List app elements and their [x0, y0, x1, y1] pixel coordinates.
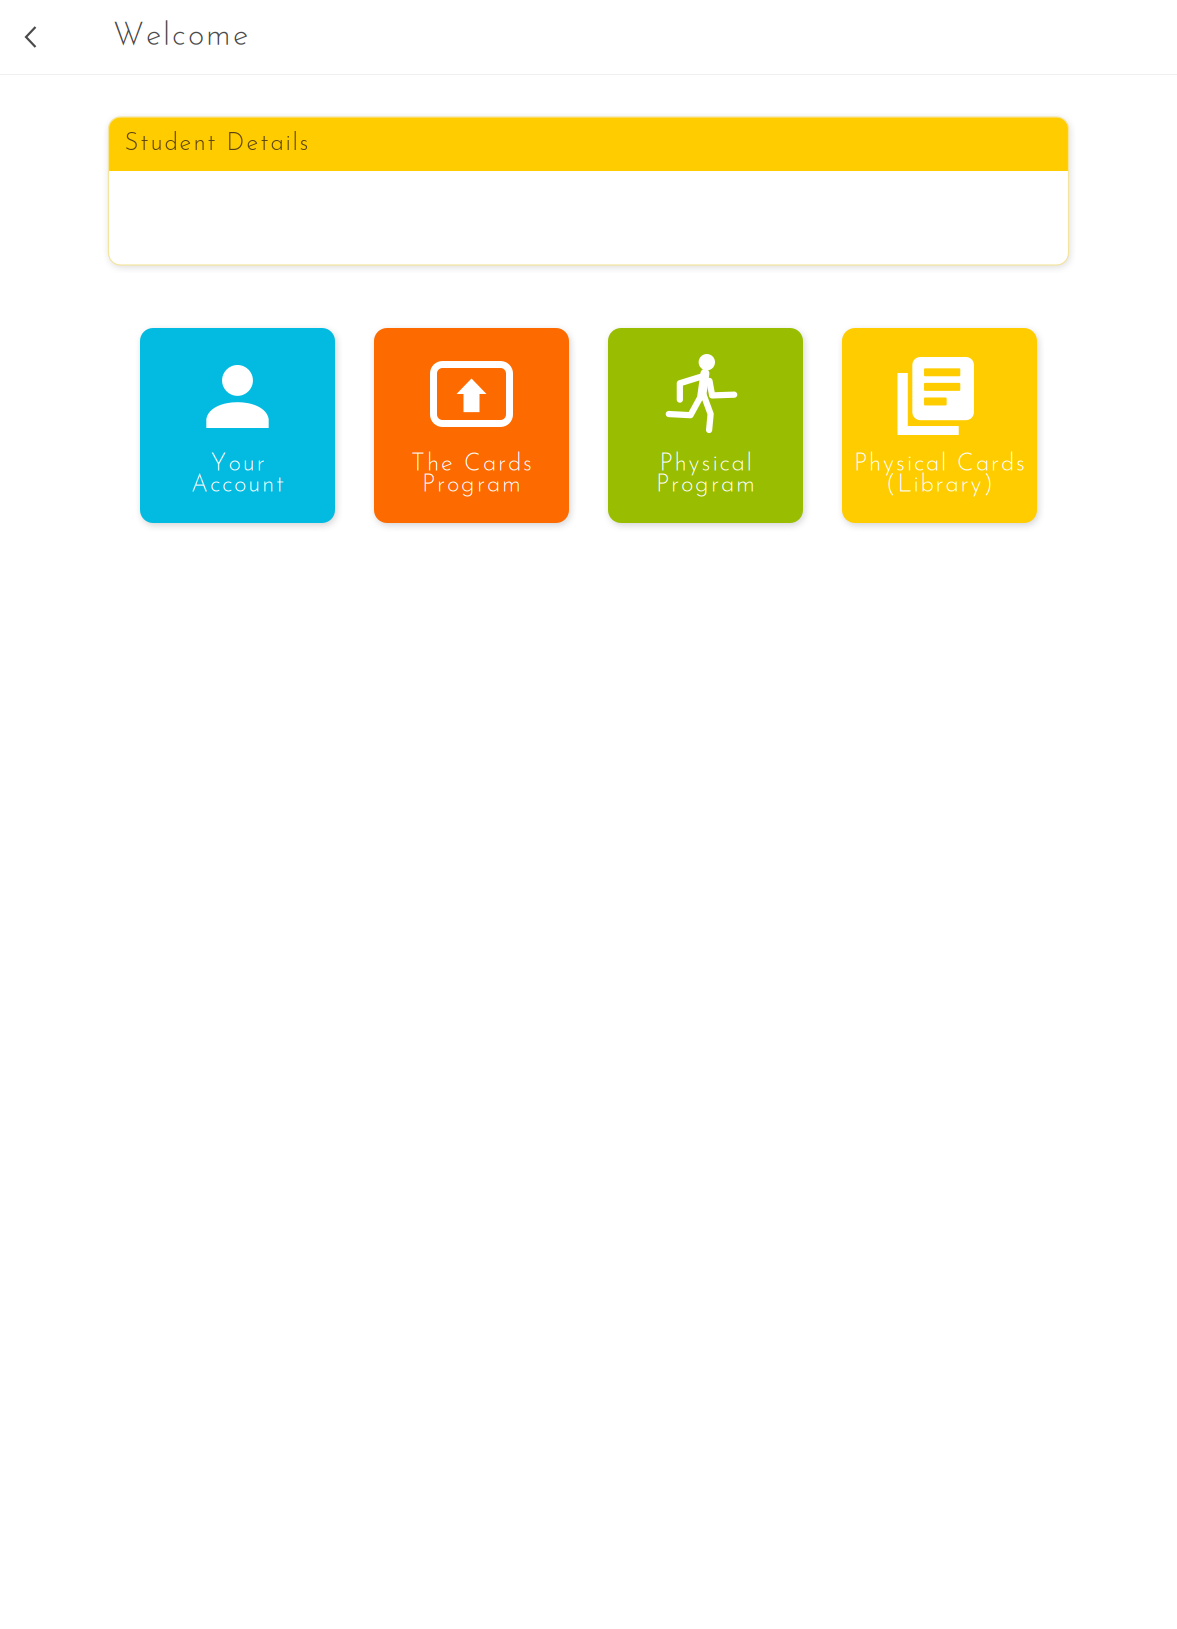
staticText: Y o u r	[210, 452, 264, 476]
staticText: P r o g r a m	[656, 473, 755, 497]
staticText: W e l c o m e	[113, 21, 248, 53]
button[interactable]: Y o u r	[140, 328, 335, 523]
button[interactable]: P h y s i c a l C a r d s	[842, 328, 1037, 523]
staticText: T h e C a r d s	[411, 452, 532, 476]
staticText: S t u d e n t D e t a i l s	[124, 132, 308, 156]
staticText: P h y s i c a l	[659, 452, 751, 476]
button[interactable]: Back	[0, 6, 62, 68]
staticText: ( L i b r a r y )	[885, 473, 993, 497]
staticText: A c c o u n t	[191, 473, 284, 497]
staticText: P r o g r a m	[422, 473, 521, 497]
button[interactable]: P h y s i c a l	[608, 328, 803, 523]
staticText: P h y s i c a l C a r d s	[854, 452, 1025, 476]
button[interactable]: T h e C a r d s	[374, 328, 569, 523]
